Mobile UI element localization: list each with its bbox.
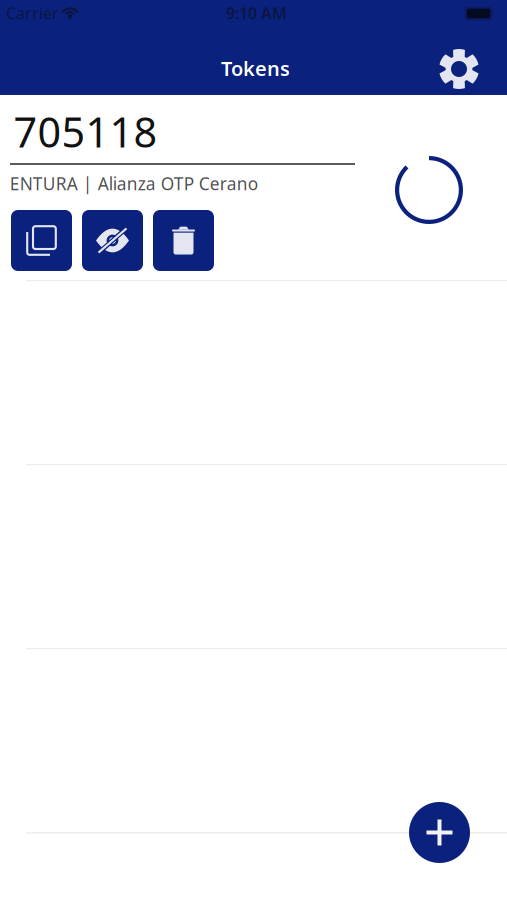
button[interactable]: Hide code bbox=[82, 210, 143, 271]
staticText: 705118 bbox=[13, 104, 157, 159]
staticText: ENTURA | Alianza OTP Cerano bbox=[10, 172, 258, 195]
staticText: Tokens bbox=[221, 55, 290, 82]
button[interactable]: Copy code bbox=[11, 210, 72, 271]
staticText: 9:10 AM bbox=[226, 2, 287, 24]
staticText: Carrier bbox=[6, 2, 59, 24]
button[interactable]: Delete token bbox=[153, 210, 214, 271]
button[interactable]: Add token bbox=[409, 802, 470, 863]
button[interactable]: Settings bbox=[430, 42, 488, 96]
